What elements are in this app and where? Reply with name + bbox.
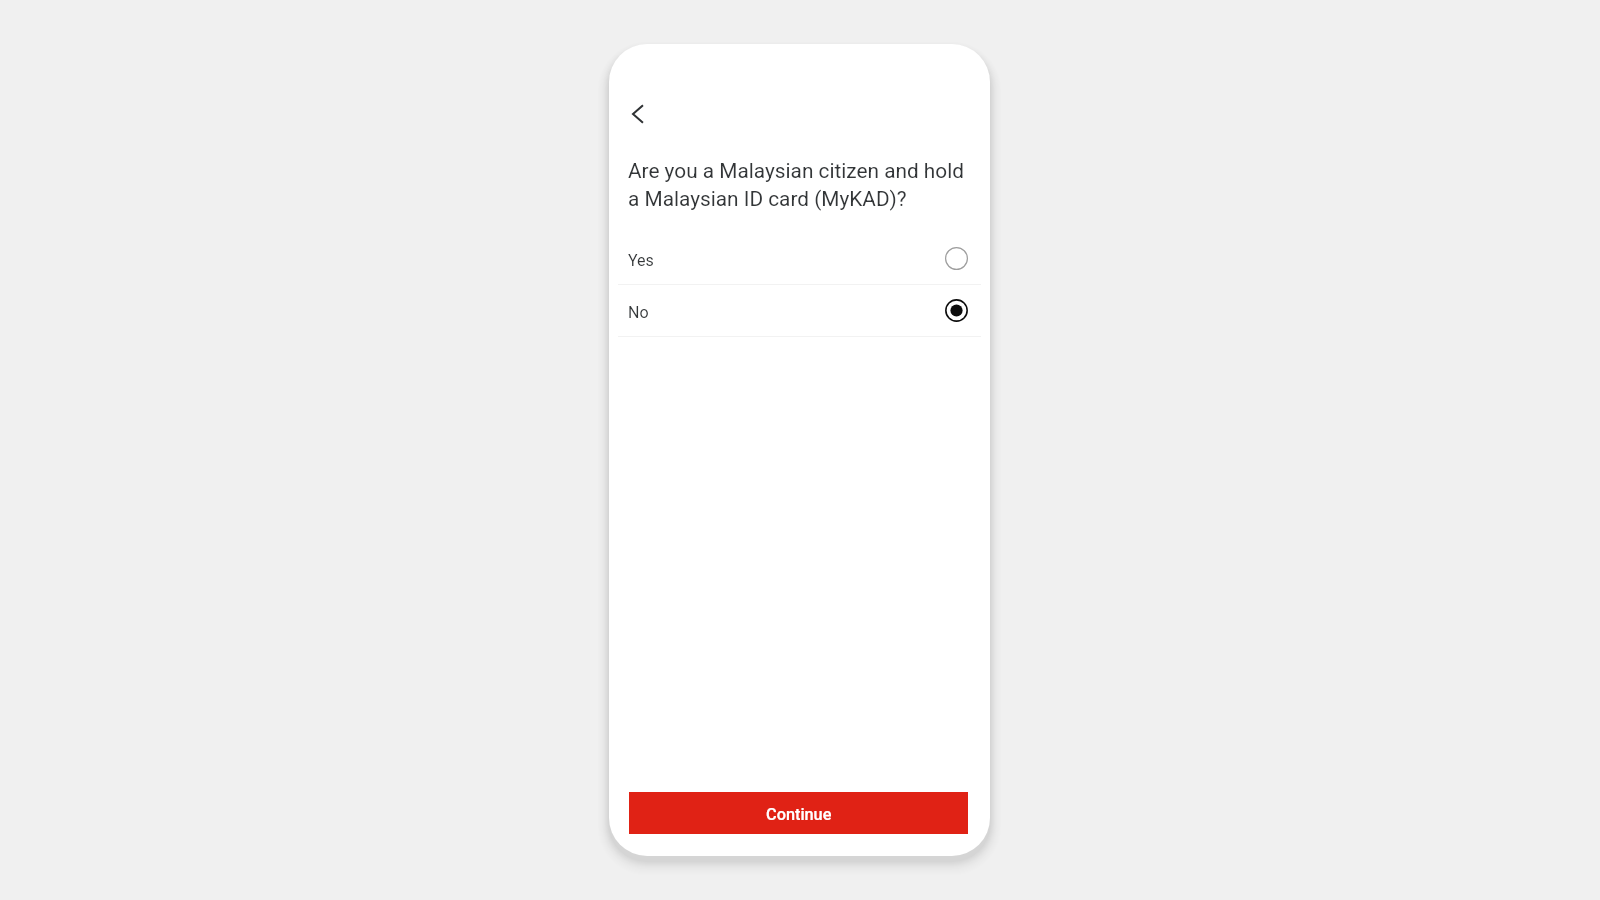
- button[interactable]: Back: [619, 96, 655, 132]
- staticText: Are you a Malaysian citizen and hold a M…: [628, 159, 976, 211]
- staticText: Yes: [628, 251, 654, 270]
- button[interactable]: No: [609, 285, 990, 336]
- button[interactable]: Continue: [629, 792, 968, 834]
- staticText: Continue: [766, 805, 832, 824]
- button[interactable]: Yes: [609, 233, 990, 284]
- staticText: No: [628, 303, 649, 322]
